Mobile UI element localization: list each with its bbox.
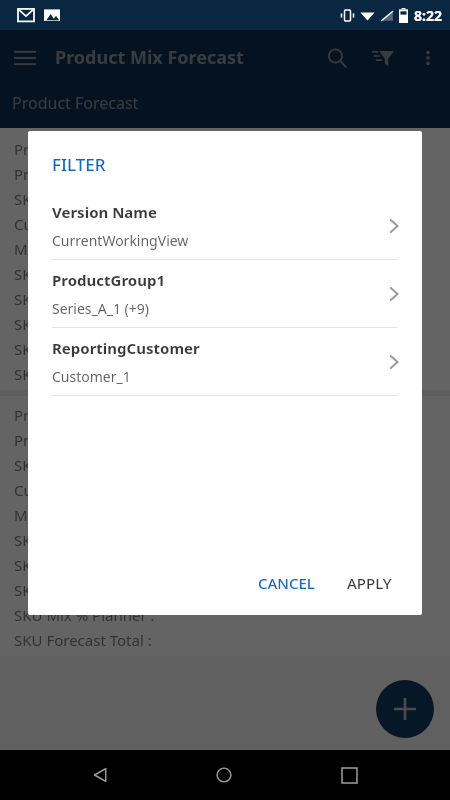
staticText: SKU Forecast Total :: [14, 364, 152, 384]
staticText: Version Name: [52, 202, 157, 222]
button[interactable]: Recent apps: [325, 751, 373, 799]
staticText: SKU Mix % LC :: [14, 555, 118, 575]
staticText: Month :: [14, 505, 69, 525]
staticText: SKU :: [14, 455, 51, 475]
button[interactable]: Filter: [360, 35, 406, 81]
button[interactable]: Open navigation menu: [0, 33, 50, 83]
button[interactable]: APPLY: [337, 565, 402, 601]
staticText: ProductGroup1: [52, 270, 166, 290]
staticText: Product Forecast: [12, 92, 139, 114]
staticText: SKU :: [14, 189, 51, 209]
button[interactable]: Back: [76, 751, 124, 799]
staticText: Month :: [14, 239, 69, 259]
button[interactable]: ReportingCustomer: [28, 328, 422, 395]
button[interactable]: Add: [376, 680, 434, 738]
staticText: Customer :: [14, 214, 92, 234]
staticText: Customer :: [14, 480, 92, 500]
staticText: Product Group :: [14, 164, 126, 184]
staticText: SKU Mix % System :: [14, 580, 151, 600]
button[interactable]: More options: [406, 36, 450, 80]
staticText: SKU Mix % System :: [14, 314, 151, 334]
staticText: SKU Mix % Planner :: [14, 605, 155, 625]
staticText: Product Forecast :: [14, 405, 141, 425]
staticText: SKU Mix % Actuals :: [14, 530, 151, 550]
staticText: Product Mix Forecast: [55, 45, 244, 70]
button[interactable]: Version Name: [28, 192, 422, 259]
button[interactable]: CANCEL: [248, 565, 325, 601]
button[interactable]: Search: [314, 35, 360, 81]
staticText: ReportingCustomer: [52, 338, 200, 358]
staticText: 8:22: [414, 6, 442, 25]
staticText: Product Forecast :: [14, 139, 141, 159]
staticText: Product Group :: [14, 430, 126, 450]
staticText: SKU Mix % Planner :: [14, 339, 155, 359]
staticText: CurrentWorkingView: [52, 231, 189, 250]
staticText: Customer_1: [52, 367, 131, 386]
staticText: SKU Mix % LC :: [14, 289, 118, 309]
button[interactable]: Home: [200, 751, 248, 799]
button[interactable]: ProductGroup1: [28, 260, 422, 327]
staticText: CANCEL: [258, 573, 315, 593]
staticText: SKU Forecast Total :: [14, 630, 152, 650]
staticText: FILTER: [52, 153, 106, 176]
staticText: SKU Mix % Actuals :: [14, 264, 151, 284]
staticText: APPLY: [347, 573, 392, 593]
staticText: Series_A_1 (+9): [52, 299, 150, 318]
